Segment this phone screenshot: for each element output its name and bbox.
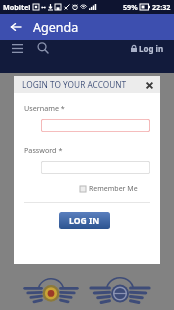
button[interactable]: Sri Lanka emblem link	[23, 278, 79, 306]
button[interactable]: LOG IN	[59, 212, 110, 229]
staticText: LOGIN TO YOUR ACCOUNT	[22, 79, 127, 90]
staticText: 59%	[123, 2, 138, 12]
staticText: Agenda	[33, 19, 79, 36]
button[interactable]: Remember Me	[78, 183, 140, 195]
staticText: Mobitel	[3, 2, 31, 12]
button[interactable]	[41, 161, 150, 174]
staticText: Remember Me	[89, 184, 138, 194]
button[interactable]: Search	[35, 40, 51, 56]
button[interactable]: Menu	[9, 40, 25, 56]
staticText: LOG IN	[69, 215, 100, 227]
button[interactable]: Back	[7, 18, 25, 36]
staticText: Log in	[139, 43, 164, 54]
staticText: 22:32	[152, 2, 171, 12]
staticText: Password *	[24, 145, 63, 155]
button[interactable]	[41, 119, 150, 132]
staticText: Username *	[24, 103, 65, 113]
button[interactable]: ICAO emblem link	[89, 277, 151, 307]
button[interactable]: Log in	[129, 41, 166, 56]
button[interactable]: Close	[144, 80, 154, 90]
